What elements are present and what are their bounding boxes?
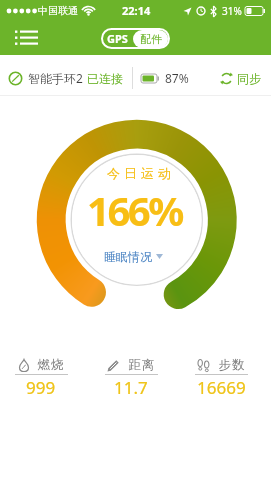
button[interactable]: 同步	[220, 60, 271, 96]
staticText: GPS	[107, 31, 128, 46]
staticText: 智能手环2	[28, 70, 83, 86]
staticText: 今日运动	[105, 165, 173, 181]
button[interactable]: 燃烧	[0, 357, 86, 399]
button[interactable]	[10, 23, 44, 53]
button[interactable]: GPS	[101, 28, 133, 49]
button[interactable]: 智能手环2	[0, 60, 271, 96]
staticText: 16669	[197, 376, 246, 399]
staticText: 166%	[87, 183, 182, 237]
staticText: 已连接	[87, 71, 123, 86]
staticText: 燃烧	[37, 357, 64, 373]
staticText: 距离	[128, 357, 155, 373]
staticText: 11.7	[114, 376, 148, 399]
staticText: 999	[26, 376, 56, 399]
button[interactable]: 步数	[176, 357, 266, 399]
staticText: 睡眠情况	[104, 249, 152, 264]
button[interactable]: 配件	[133, 30, 168, 48]
staticText: 步数	[218, 357, 245, 373]
staticText: 中国联通	[38, 4, 78, 17]
staticText: 22:14	[122, 3, 151, 18]
staticText: 31%	[222, 4, 242, 18]
staticText: 87%	[165, 70, 189, 86]
staticText: 配件	[140, 32, 162, 46]
staticText: 同步	[237, 71, 261, 86]
button[interactable]: 睡眠情况	[104, 249, 163, 264]
button[interactable]: 距离	[86, 357, 176, 399]
